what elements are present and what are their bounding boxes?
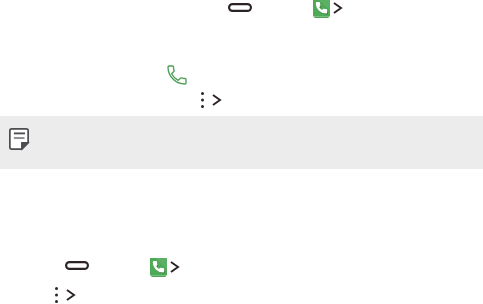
button[interactable]: Open bbox=[66, 289, 75, 301]
button[interactable]: Toggle bbox=[65, 261, 89, 270]
button[interactable]: Open bbox=[333, 2, 342, 14]
button[interactable]: Call bbox=[168, 66, 186, 84]
button[interactable]: Phone app bbox=[150, 258, 167, 277]
button[interactable]: Toggle bbox=[228, 3, 252, 12]
button[interactable]: Open bbox=[170, 261, 179, 273]
button[interactable]: More options bbox=[55, 287, 58, 303]
button[interactable]: More options bbox=[201, 92, 204, 108]
button[interactable]: Note bbox=[9, 128, 29, 150]
button[interactable]: Open bbox=[212, 94, 221, 106]
button[interactable]: Phone app bbox=[313, 0, 330, 18]
button[interactable] bbox=[0, 116, 483, 169]
